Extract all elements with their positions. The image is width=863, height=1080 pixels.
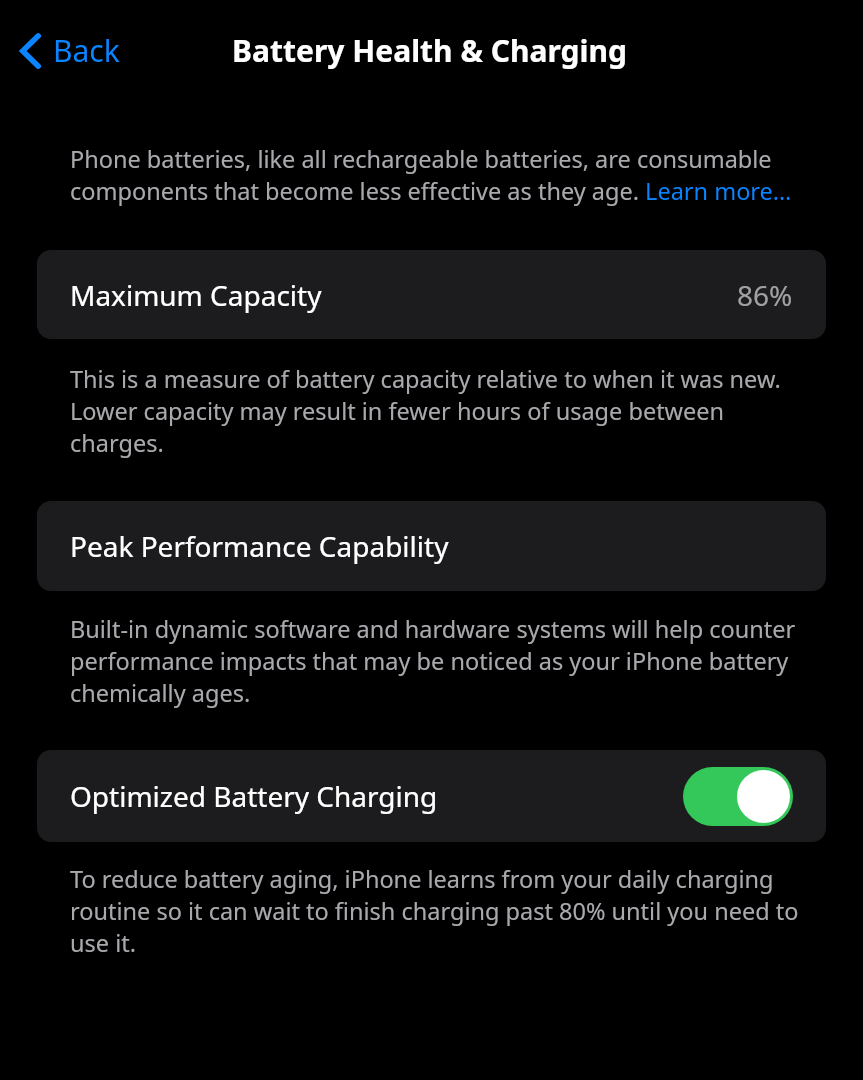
button[interactable]: Optimized Battery Charging: [37, 750, 826, 842]
button[interactable]: Maximum Capacity: [37, 250, 826, 339]
staticText: Optimized Battery Charging: [70, 777, 438, 815]
button[interactable]: Back: [12, 24, 126, 77]
staticText: Battery Health & Charging: [232, 30, 627, 71]
staticText: Built-in dynamic software and hardware s…: [70, 613, 812, 709]
staticText: This is a measure of battery capacity re…: [70, 363, 806, 459]
staticText: Maximum Capacity: [70, 276, 322, 314]
staticText: Phone batteries, like all rechargeable b…: [70, 143, 798, 207]
staticText: Back: [53, 30, 120, 71]
staticText: Peak Performance Capability: [70, 527, 449, 565]
button[interactable]: Optimized Battery Charging toggle: [683, 767, 793, 826]
staticText: 86%: [737, 276, 793, 314]
button[interactable]: Peak Performance Capability: [37, 501, 826, 591]
staticText: To reduce battery aging, iPhone learns f…: [70, 863, 812, 959]
